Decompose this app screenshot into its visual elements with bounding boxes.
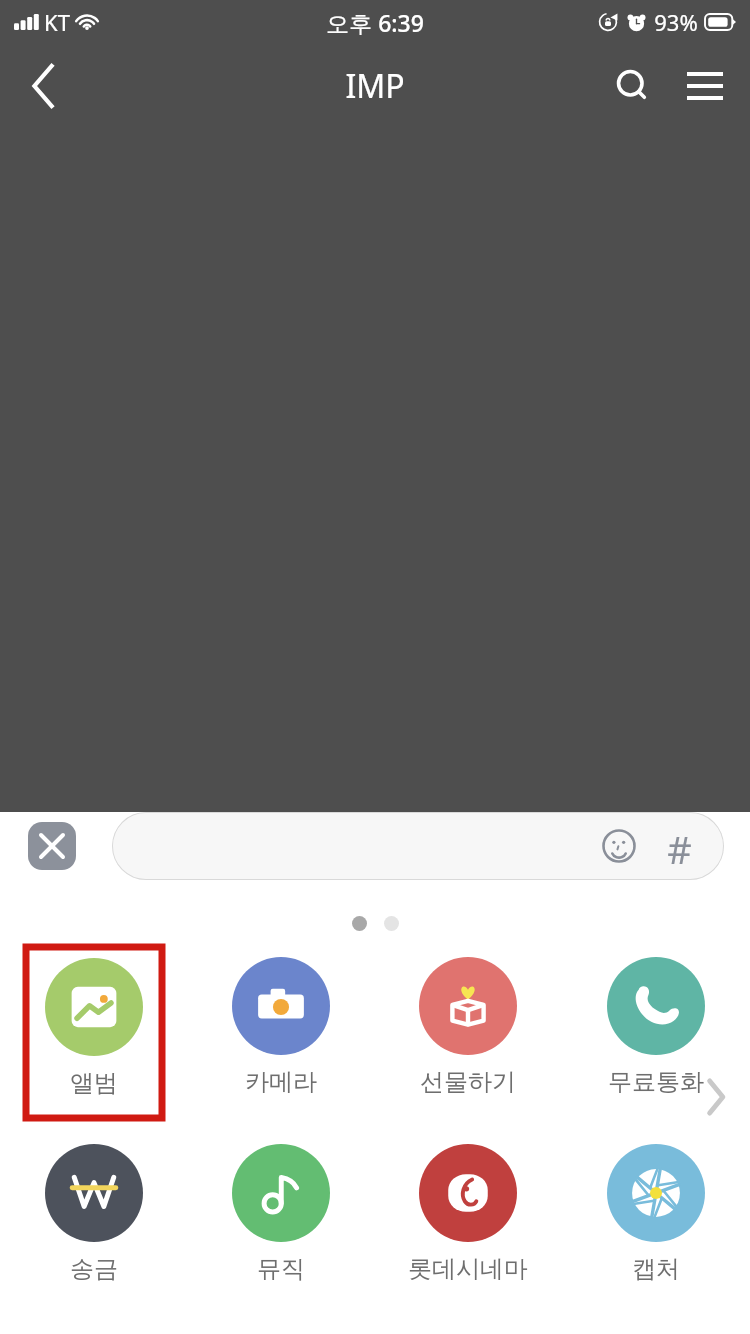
button[interactable]: 뮤직 (213, 1134, 349, 1296)
staticText: # (667, 823, 692, 869)
button[interactable]: Hashtag (656, 823, 702, 869)
staticText: KT (44, 7, 70, 37)
staticText: 송금 (70, 1254, 118, 1284)
button[interactable]: Next page (694, 1075, 738, 1119)
button[interactable]: 앨범 (27, 948, 161, 1110)
staticText: IMP (345, 64, 405, 108)
button[interactable]: Emoji (596, 823, 642, 869)
button[interactable]: Back (10, 52, 78, 120)
button[interactable]: Close (28, 822, 76, 870)
button[interactable]: Emoji (112, 812, 724, 880)
staticText: 오후 6:39 (326, 7, 424, 38)
staticText: 앨범 (70, 1068, 118, 1098)
button[interactable]: 송금 (26, 1134, 162, 1296)
staticText: 93% (654, 7, 698, 37)
button[interactable]: 무료통화 (588, 947, 724, 1109)
staticText: 선물하기 (420, 1067, 516, 1097)
button[interactable]: Menu (674, 55, 736, 117)
staticText: 뮤직 (257, 1254, 305, 1284)
staticText: 캡처 (632, 1254, 680, 1284)
button[interactable]: 선물하기 (400, 947, 536, 1109)
button[interactable]: 캡처 (588, 1134, 724, 1296)
button[interactable]: 롯데시네마 (400, 1134, 536, 1296)
staticText: 무료통화 (608, 1067, 704, 1097)
staticText: 카메라 (245, 1067, 317, 1097)
button[interactable]: 카메라 (213, 947, 349, 1109)
button[interactable]: Search (602, 55, 664, 117)
staticText: 롯데시네마 (408, 1254, 528, 1284)
